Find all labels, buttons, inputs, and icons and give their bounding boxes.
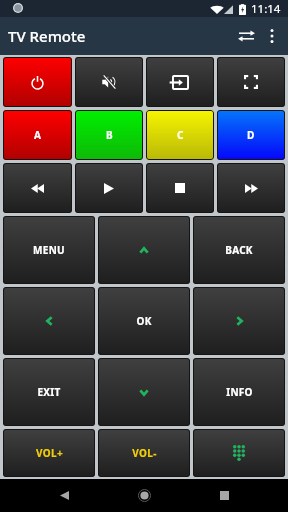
staticText: BACK — [225, 243, 253, 257]
button[interactable]: Home — [120, 479, 168, 512]
staticText: D — [247, 128, 255, 142]
button[interactable]: Aspect ratio — [217, 57, 285, 107]
button[interactable]: Up — [98, 216, 190, 284]
button[interactable]: B — [75, 110, 143, 160]
button[interactable]: More options — [261, 17, 283, 55]
staticText: VOL+ — [36, 446, 63, 460]
button[interactable]: Switch device — [231, 17, 261, 55]
button[interactable]: Keypad — [193, 429, 285, 477]
button[interactable]: Stop — [146, 163, 214, 213]
button[interactable]: INFO — [193, 358, 285, 426]
button[interactable]: C — [146, 110, 214, 160]
button[interactable]: Source — [146, 57, 214, 107]
staticText: C — [177, 128, 184, 142]
button[interactable]: Mute — [75, 57, 143, 107]
staticText: EXIT — [37, 385, 61, 399]
button[interactable]: Down — [98, 358, 190, 426]
staticText: 11:14 — [251, 1, 281, 17]
staticText: OK — [136, 314, 152, 328]
staticText: MENU — [33, 243, 65, 257]
staticText: TV Remote — [8, 26, 86, 46]
button[interactable]: Recent apps — [200, 479, 248, 512]
staticText: VOL- — [132, 446, 157, 460]
button[interactable]: Play — [75, 163, 143, 213]
button[interactable]: BACK — [193, 216, 285, 284]
staticText: A — [34, 128, 41, 142]
staticText: INFO — [226, 385, 253, 399]
button[interactable]: Rewind — [3, 163, 72, 213]
button[interactable]: D — [217, 110, 285, 160]
staticText: B — [106, 128, 113, 142]
button[interactable]: Power — [3, 57, 72, 107]
button[interactable]: Right — [193, 287, 285, 355]
button[interactable]: Back — [40, 479, 88, 512]
button[interactable]: MENU — [3, 216, 95, 284]
button[interactable]: EXIT — [3, 358, 95, 426]
button[interactable]: OK — [98, 287, 190, 355]
button[interactable]: VOL+ — [3, 429, 95, 477]
button[interactable]: A — [3, 110, 72, 160]
button[interactable]: Fast forward — [217, 163, 285, 213]
button[interactable]: Left — [3, 287, 95, 355]
button[interactable]: VOL- — [98, 429, 190, 477]
